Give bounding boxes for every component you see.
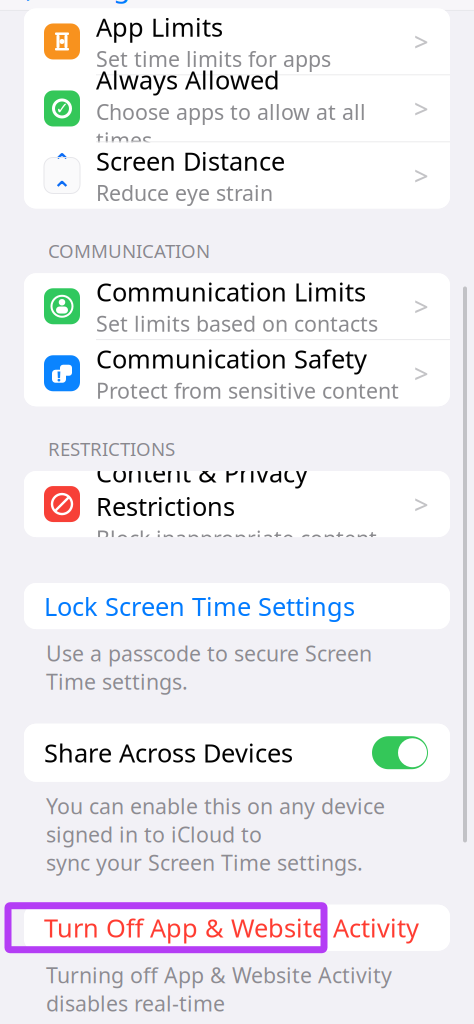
staticText: Communication Limits [96,275,366,308]
staticText: Protect from sensitive content [96,376,399,405]
button[interactable]: Lock Screen Time Settings [24,583,450,629]
staticText: Set time limits for apps [96,45,331,73]
staticText: Content & Privacy Restrictions [96,456,308,523]
staticText: Share Across Devices [44,736,293,769]
staticText: Turning off App & Website Activity disab… [46,961,392,1024]
staticText: Use a passcode to secure Screen Time set… [46,639,372,696]
staticText: Set limits based on contacts [96,309,378,338]
staticText: App Limits [96,10,223,44]
staticText: ⌃ [52,149,71,174]
staticText: > [414,487,428,521]
staticText: > [414,159,428,192]
staticText: ✓ [55,99,68,118]
staticText: Block inappropriate content [96,524,377,552]
button[interactable]: Share Across Devices [372,736,428,769]
staticText: > [414,92,428,125]
button[interactable]: ‹ [0,0,143,8]
staticText: Turn Off App & Website Activity [44,911,419,944]
button[interactable]: Turn Off App & Website Activity [24,905,450,951]
staticText: Lock Screen Time Settings [44,589,355,623]
button[interactable]: ✓ [24,75,450,141]
staticText: > [414,289,428,323]
staticText: Screen Distance [96,144,285,178]
staticText: You can enable this on any device signed… [46,792,385,877]
staticText: > [414,25,428,58]
button[interactable]: ! [24,340,450,406]
staticText: ‹ [18,0,33,16]
staticText: > [414,356,428,390]
staticText: Reduce eye strain [96,179,273,207]
staticText: Choose apps to allow at all times [96,97,366,154]
button[interactable]: ⌃ [24,142,450,208]
button[interactable]: Communication Limits [24,273,450,339]
staticText: Settings [38,0,143,5]
staticText: ! [57,367,61,385]
staticText: Always Allowed [96,63,280,96]
button[interactable]: Content & Privacy Restrictions [24,471,450,537]
staticText: RESTRICTIONS [48,436,175,461]
staticText: ⌃ [52,176,71,202]
staticText: COMMUNICATION [48,238,210,263]
button[interactable]: App Limits [24,8,450,74]
staticText: Communication Safety [96,342,367,375]
